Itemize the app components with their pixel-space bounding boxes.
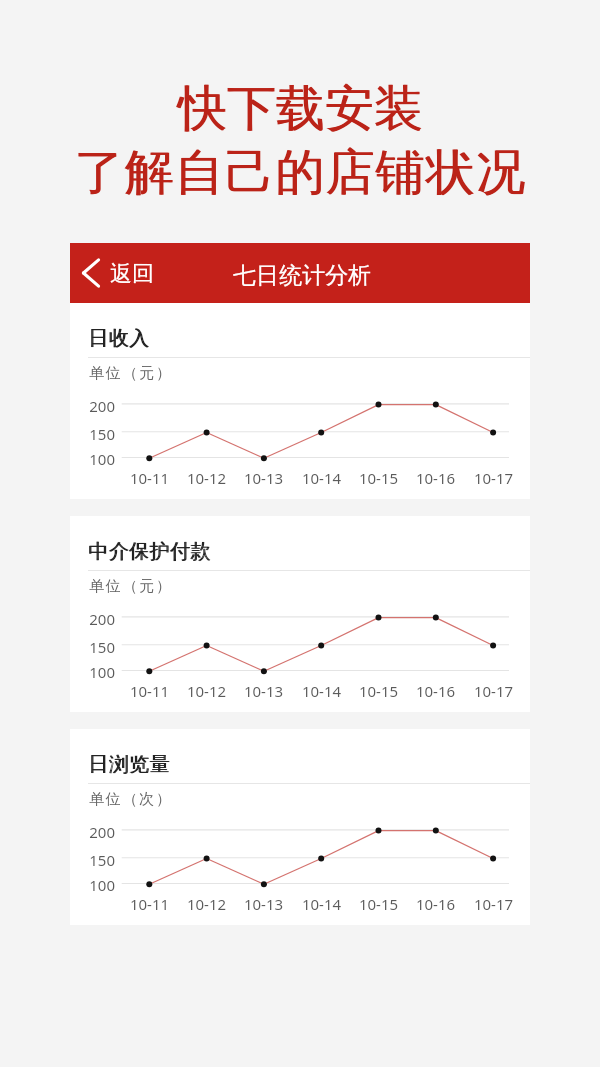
staticText: 200 <box>82 609 115 629</box>
staticText: 10-13 <box>235 894 292 914</box>
staticText: 10-17 <box>465 681 522 701</box>
staticText: 10-17 <box>465 468 522 488</box>
staticText: 10-13 <box>235 681 292 701</box>
staticText: 单位（次） <box>88 790 172 809</box>
button[interactable]: 中介保护付款 <box>70 516 530 712</box>
staticText: 单位（元） <box>88 364 172 383</box>
staticText: 中介保护付款 <box>89 539 212 564</box>
staticText: 10-16 <box>407 468 464 488</box>
staticText: 日收入 <box>89 326 151 351</box>
staticText: 10-12 <box>178 681 235 701</box>
staticText: 中介保护付款 <box>88 539 211 564</box>
staticText: 10-17 <box>465 894 522 914</box>
staticText: 七日统计分析 <box>233 261 371 290</box>
staticText: 了解自己的店铺状况 <box>0 142 600 204</box>
staticText: 10-14 <box>293 681 350 701</box>
staticText: 10-13 <box>235 468 292 488</box>
staticText: 200 <box>82 822 115 842</box>
staticText: 100 <box>82 662 115 682</box>
staticText: 单位（元） <box>88 577 172 596</box>
staticText: 快下载安装 <box>0 78 600 140</box>
staticText: 150 <box>82 637 115 657</box>
staticText: 日收入 <box>88 326 150 351</box>
staticText: 返回 <box>110 260 154 288</box>
staticText: 日浏览量 <box>89 752 171 777</box>
staticText: 10-16 <box>407 681 464 701</box>
staticText: 10-15 <box>350 894 407 914</box>
staticText: 10-15 <box>350 468 407 488</box>
button[interactable]: 日收入 <box>70 303 530 499</box>
staticText: 了解自己的店铺状况 <box>1 142 600 204</box>
button[interactable]: 日浏览量 <box>70 729 530 925</box>
staticText: 10-14 <box>293 468 350 488</box>
staticText: 快下载安装 <box>1 78 600 140</box>
staticText: 100 <box>82 449 115 469</box>
staticText: 150 <box>82 850 115 870</box>
staticText: 10-12 <box>178 468 235 488</box>
staticText: 200 <box>82 396 115 416</box>
staticText: 100 <box>82 875 115 895</box>
staticText: 10-12 <box>178 894 235 914</box>
staticText: 10-11 <box>121 681 178 701</box>
staticText: 10-14 <box>293 894 350 914</box>
button[interactable]: 返回 Back <box>70 249 168 297</box>
staticText: 10-11 <box>121 894 178 914</box>
staticText: 10-16 <box>407 894 464 914</box>
staticText: 150 <box>82 424 115 444</box>
staticText: 日浏览量 <box>88 752 170 777</box>
staticText: 10-11 <box>121 468 178 488</box>
staticText: 10-15 <box>350 681 407 701</box>
